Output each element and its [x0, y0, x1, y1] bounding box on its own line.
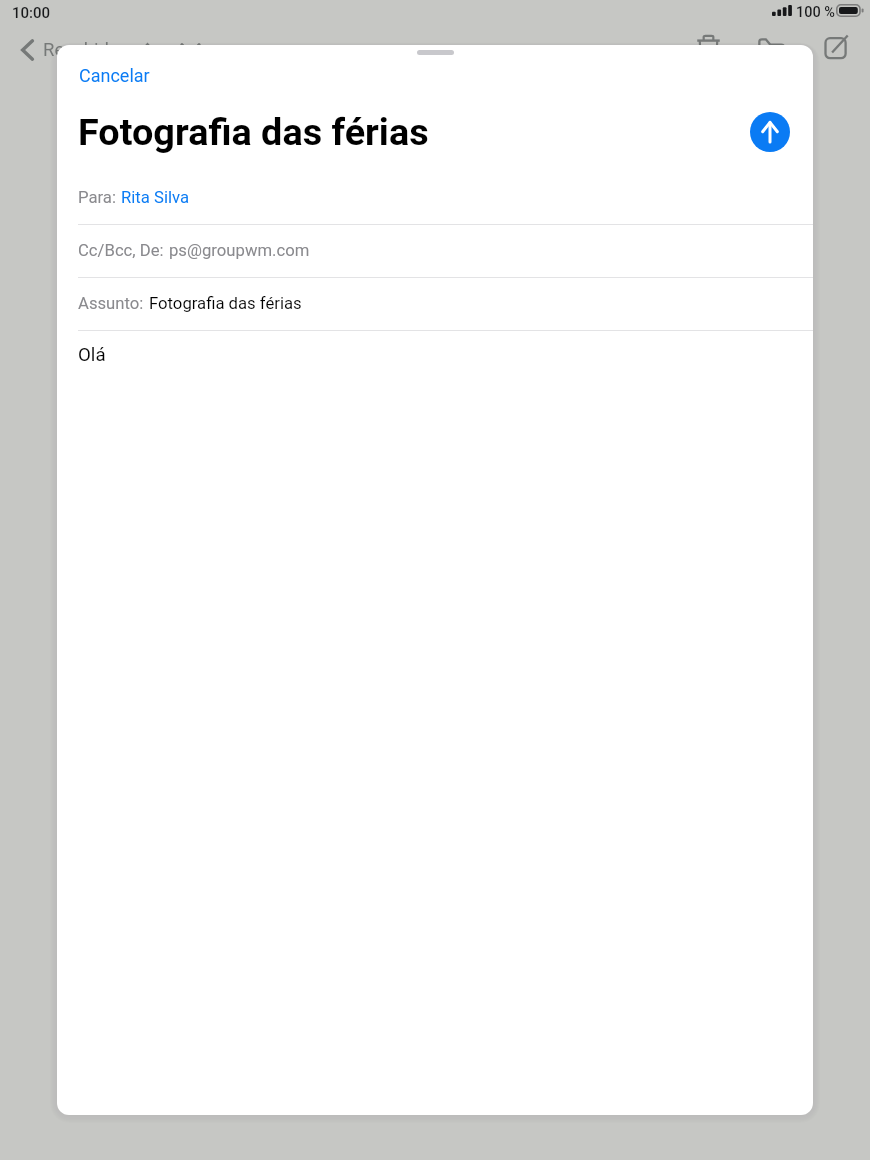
- staticText: Fotografia das férias: [78, 110, 429, 154]
- staticText: Recebidos: [43, 39, 130, 61]
- staticText: Fotografia das férias: [149, 294, 302, 314]
- button[interactable]: Para:: [57, 172, 813, 225]
- button[interactable]: Cancelar: [73, 61, 156, 90]
- button[interactable]: Cc/Bcc, De:: [57, 225, 813, 278]
- button[interactable]: Assunto:: [57, 278, 813, 331]
- button[interactable]: Enviar: [750, 112, 790, 152]
- staticText: Para:: [78, 188, 116, 208]
- button[interactable]: Nova mensagem: [819, 28, 855, 68]
- staticText: ps@groupwm.com: [169, 241, 310, 261]
- button[interactable]: Mensagem anterior: [133, 36, 161, 62]
- staticText: Cancelar: [79, 65, 150, 86]
- staticText: Rita Silva: [121, 188, 190, 208]
- staticText: 10:00: [12, 4, 51, 22]
- staticText: Olá: [78, 344, 106, 366]
- button[interactable]: Mover para pasta: [756, 28, 792, 68]
- staticText: Assunto:: [78, 294, 144, 314]
- staticText: 100 %: [796, 4, 835, 21]
- button[interactable]: Mensagem seguinte: [176, 36, 204, 62]
- button[interactable]: Voltar: [12, 33, 136, 67]
- staticText: Cc/Bcc, De:: [78, 241, 164, 261]
- button[interactable]: Eliminar: [694, 28, 730, 68]
